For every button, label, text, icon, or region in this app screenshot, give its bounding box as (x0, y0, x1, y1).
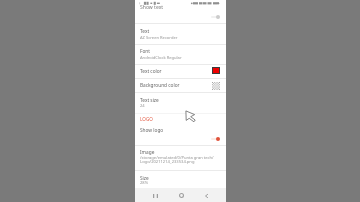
button[interactable]: Image (135, 145, 226, 170)
button[interactable]: Show text toggle (211, 15, 220, 19)
button[interactable]: Show logo (135, 124, 226, 146)
button[interactable]: Text color (135, 64, 226, 78)
button[interactable]: Pick text colour (212, 67, 220, 74)
staticText: Image (140, 149, 155, 155)
button[interactable]: Pick background colour (212, 82, 220, 90)
staticText: Background color (140, 82, 180, 88)
button[interactable]: Back (200, 189, 213, 202)
button[interactable]: Home (175, 189, 188, 202)
staticText: Text (140, 28, 150, 34)
staticText: Text color (140, 68, 162, 74)
button[interactable]: Recent apps (149, 189, 162, 202)
staticText: Text size (140, 97, 159, 103)
button[interactable]: Background color (135, 78, 226, 92)
button[interactable]: Text size (135, 92, 226, 112)
staticText: Size (140, 175, 149, 181)
staticText: LOGO (140, 116, 153, 122)
button[interactable]: Size (135, 170, 226, 188)
button[interactable]: Font (135, 44, 226, 65)
staticText: Logo/20211214_233534.png (140, 159, 195, 165)
staticText: AZ Screen Recorder (140, 35, 178, 41)
button[interactable]: Show logo toggle (211, 137, 220, 141)
staticText: Font (140, 48, 150, 54)
staticText: /storage/emulated/0/Punta gran tech/ (140, 155, 214, 161)
staticText: 28% (140, 180, 149, 186)
button[interactable]: Text (135, 23, 226, 43)
staticText: Show text (140, 4, 164, 11)
staticText: 24 (140, 103, 145, 109)
staticText: AndroidClock Regular (140, 55, 182, 61)
staticText: Show logo (140, 127, 164, 133)
